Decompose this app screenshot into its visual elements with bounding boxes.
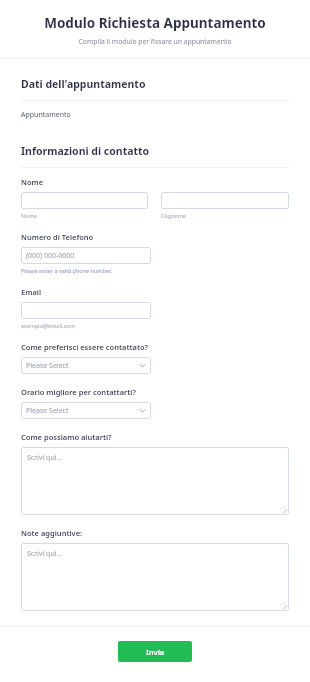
staticText: Informazioni di contatto [21, 144, 150, 158]
staticText: (000) 000-0000 [26, 251, 75, 261]
button[interactable]: (000) 000-0000 [21, 247, 151, 264]
staticText: Please enter a valid phone number. [21, 267, 112, 274]
staticText: Invia [146, 647, 165, 657]
staticText: Scrivi qui... [27, 549, 63, 559]
button[interactable]: Please Select [21, 357, 151, 374]
staticText: Please Select [26, 361, 69, 371]
staticText: Email [21, 287, 42, 297]
staticText: Nome [21, 177, 44, 187]
staticText: Scrivi qui... [27, 453, 63, 463]
staticText: esempio@email.com [21, 322, 75, 329]
button[interactable]: Invia [118, 641, 192, 662]
staticText: Cognome [161, 212, 187, 219]
staticText: Come possiamo aiutarti? [21, 432, 112, 442]
button[interactable] [21, 192, 148, 209]
staticText: Come preferisci essere contattato? [21, 342, 149, 352]
staticText: Please Select [26, 406, 69, 416]
button[interactable]: Please Select [21, 402, 151, 419]
button[interactable] [161, 192, 289, 209]
other: Open dropdown [139, 362, 146, 369]
staticText: Appuntamento [21, 110, 71, 120]
staticText: Dati dell'appuntamento [21, 77, 146, 91]
button[interactable] [21, 302, 151, 319]
staticText: Nome [21, 212, 37, 219]
other: Open dropdown [139, 407, 146, 414]
staticText: Numero di Telefono [21, 232, 94, 242]
staticText: Note aggiuntive: [21, 528, 83, 538]
staticText: Orario migliore per contattarti? [21, 387, 136, 397]
button[interactable]: Scrivi qui... [21, 543, 289, 611]
button[interactable]: Scrivi qui... [21, 447, 289, 515]
staticText: Compila il modulo per fissare un appunta… [12, 37, 298, 46]
staticText: Modulo Richiesta Appuntamento [12, 14, 298, 32]
